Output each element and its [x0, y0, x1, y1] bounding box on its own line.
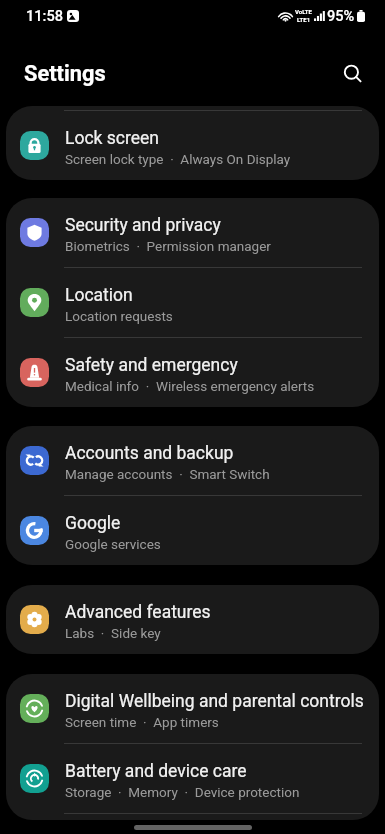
- staticText: Battery and device care: [65, 761, 247, 782]
- staticText: Digital Wellbeing and parental controls: [65, 691, 364, 712]
- staticText: Safety and emergency: [65, 355, 238, 376]
- staticText: Location: [65, 285, 133, 306]
- staticText: Location requests: [65, 308, 173, 324]
- staticText: Settings: [24, 61, 106, 87]
- button[interactable]: Battery and device care: [6, 744, 379, 813]
- staticText: Security and privacy: [65, 215, 221, 236]
- button[interactable]: Search: [333, 54, 373, 94]
- staticText: Manage accounts · Smart Switch: [65, 466, 270, 482]
- staticText: Accounts and backup: [65, 443, 234, 464]
- staticText: Biometrics · Permission manager: [65, 238, 271, 254]
- staticText: Google: [65, 513, 121, 534]
- staticText: Lock screen: [65, 128, 159, 149]
- staticText: Google services: [65, 536, 161, 552]
- staticText: 95%: [327, 7, 355, 24]
- staticText: Advanced features: [65, 602, 211, 623]
- button[interactable]: Digital Wellbeing and parental controls: [6, 674, 379, 743]
- button[interactable]: Accounts and backup: [6, 426, 379, 495]
- staticText: Screen time · App timers: [65, 714, 219, 730]
- staticText: Medical info · Wireless emergency alerts: [65, 378, 315, 394]
- button[interactable]: Location: [6, 268, 379, 337]
- button[interactable]: Lock screen: [6, 111, 379, 180]
- staticText: Screen lock type · Always On Display: [65, 151, 291, 167]
- button[interactable]: Google: [6, 496, 379, 565]
- staticText: 11:58: [26, 7, 64, 24]
- staticText: Storage · Memory · Device protection: [65, 784, 300, 800]
- staticText: VoLTE: [295, 8, 312, 15]
- staticText: Labs · Side key: [65, 625, 161, 641]
- button[interactable]: Security and privacy: [6, 198, 379, 267]
- staticText: LTE1: [297, 16, 311, 23]
- button[interactable]: Safety and emergency: [6, 338, 379, 407]
- button[interactable]: Advanced features: [6, 585, 379, 654]
